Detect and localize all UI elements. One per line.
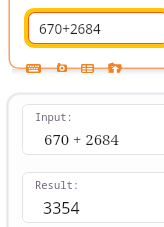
staticText: Input:: [35, 110, 73, 124]
button[interactable]: Keyboard: [26, 64, 41, 73]
staticText: 3354: [43, 197, 80, 219]
button[interactable]: Upload file: [108, 62, 122, 74]
staticText: 670+2684: [39, 20, 101, 38]
button[interactable]: History: [81, 64, 94, 73]
button[interactable]: Camera: [57, 63, 67, 72]
staticText: Result:: [35, 178, 80, 192]
button[interactable]: Input:: [22, 104, 164, 155]
button[interactable]: Result:: [22, 172, 164, 223]
staticText: 670 + 2684: [44, 129, 119, 149]
button[interactable]: 670+2684: [29, 13, 164, 43]
